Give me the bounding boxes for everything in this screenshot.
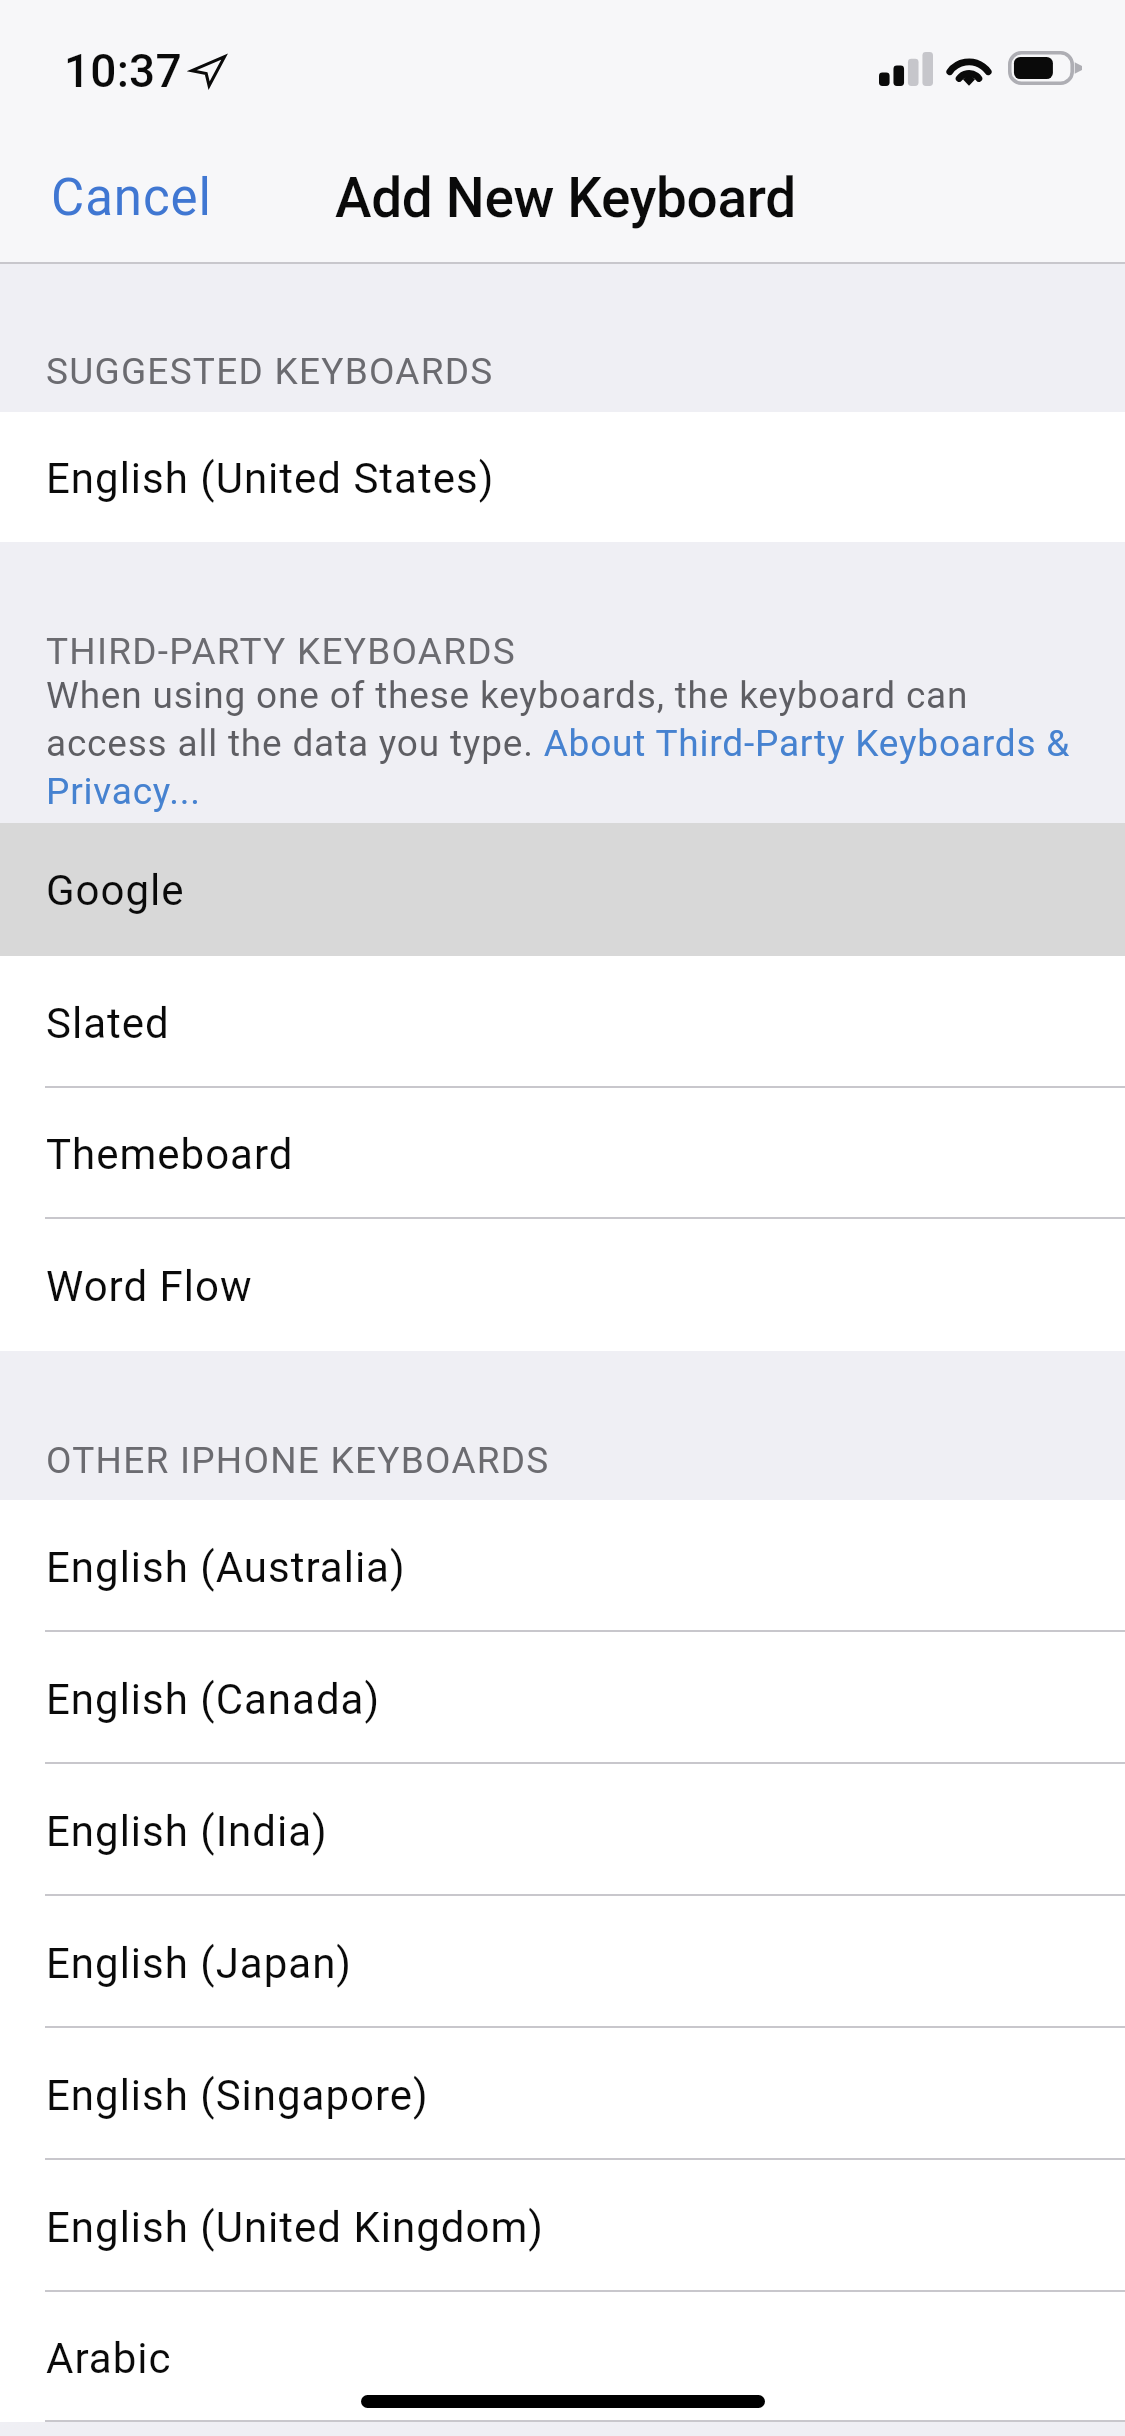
staticText: access all the data you type. About Thir… — [46, 722, 1071, 765]
button[interactable]: Cancel — [0, 136, 263, 260]
staticText: English (Singapore) — [46, 2071, 429, 2120]
staticText: When using one of these keyboards, the k… — [46, 674, 969, 717]
staticText: Word Flow — [46, 1262, 253, 1311]
button[interactable]: Themeboard — [0, 1088, 1125, 1219]
staticText: THIRD-PARTY KEYBOARDS — [46, 630, 516, 673]
button[interactable]: Word Flow — [0, 1219, 1125, 1351]
button[interactable]: Arabic — [0, 2292, 1125, 2422]
staticText: English (United Kingdom) — [46, 2203, 544, 2252]
button[interactable]: English (United Kingdom) — [0, 2160, 1125, 2292]
staticText: Themeboard — [46, 1130, 294, 1179]
button[interactable]: English (Canada) — [0, 1632, 1125, 1764]
staticText: Slated — [46, 999, 170, 1048]
staticText: English (United States) — [46, 454, 495, 503]
other: Cellular signal strength — [879, 52, 933, 86]
staticText: Privacy... — [46, 770, 201, 813]
staticText: SUGGESTED KEYBOARDS — [46, 350, 494, 393]
other: Location services active — [190, 55, 226, 87]
staticText: OTHER IPHONE KEYBOARDS — [46, 1439, 550, 1482]
staticText: Arabic — [46, 2334, 172, 2383]
staticText: English (Canada) — [46, 1675, 381, 1724]
button[interactable]: English (India) — [0, 1764, 1125, 1896]
other: Wi-Fi connected — [945, 51, 993, 85]
button[interactable]: Privacy... — [46, 770, 201, 813]
staticText: 10:37 — [64, 44, 182, 98]
staticText: English (Japan) — [46, 1939, 352, 1988]
staticText: Cancel — [51, 168, 212, 228]
button[interactable]: Google — [0, 823, 1125, 956]
staticText: English (Australia) — [46, 1543, 406, 1592]
staticText: Google — [46, 866, 185, 915]
staticText: Add New Keyboard — [335, 166, 796, 230]
button[interactable]: English (United States) — [0, 412, 1125, 542]
staticText: English (India) — [46, 1807, 328, 1856]
button[interactable]: English (Australia) — [0, 1500, 1125, 1632]
other: Battery level — [1008, 51, 1082, 85]
button[interactable]: English (Singapore) — [0, 2028, 1125, 2160]
button[interactable]: English (Japan) — [0, 1896, 1125, 2028]
button[interactable]: Slated — [0, 956, 1125, 1088]
